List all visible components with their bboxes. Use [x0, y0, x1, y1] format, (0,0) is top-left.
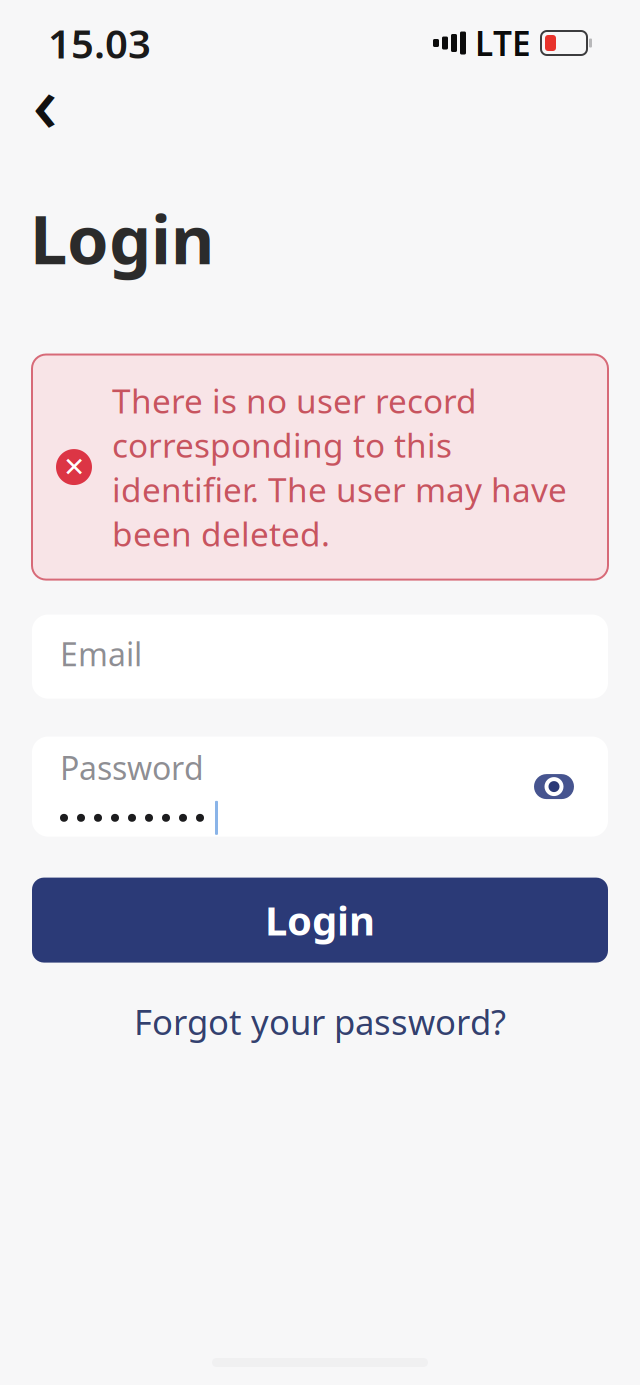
staticText: Email — [60, 633, 142, 675]
button[interactable]: Forgot your password? — [114, 991, 526, 1053]
button[interactable]: Back — [12, 74, 78, 140]
staticText: LTE — [475, 21, 531, 65]
button[interactable]: Email — [32, 615, 608, 699]
button[interactable]: Show password — [526, 759, 582, 815]
staticText: 15.03 — [48, 16, 151, 69]
staticText: ✕ — [63, 452, 85, 482]
button[interactable]: Login — [32, 878, 608, 963]
staticText: Forgot your password? — [134, 999, 506, 1045]
staticText: Login — [30, 194, 214, 282]
staticText: Password — [60, 746, 204, 789]
staticText: Login — [265, 893, 375, 947]
staticText: There is no user record corresponding to… — [112, 378, 567, 556]
staticText: ‹ — [32, 51, 57, 153]
